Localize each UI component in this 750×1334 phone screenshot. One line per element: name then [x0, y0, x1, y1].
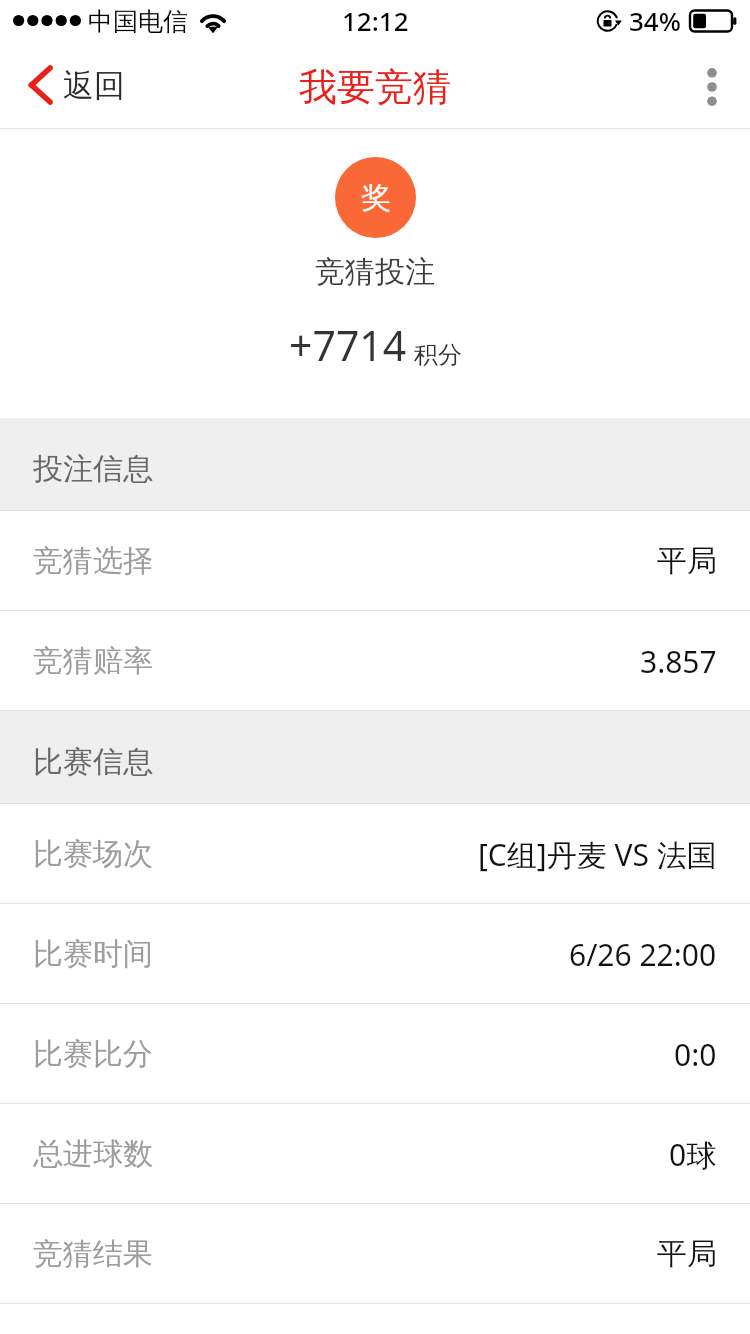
staticText: 比赛比分: [33, 1035, 153, 1073]
staticText: 6/26 22:00: [569, 934, 717, 975]
staticText: 奖: [361, 179, 391, 217]
staticText: 我要竞猜: [299, 63, 451, 111]
staticText: [C组]丹麦 VS 法国: [478, 834, 717, 875]
button[interactable]: 比赛时间: [0, 904, 750, 1004]
staticText: 比赛时间: [33, 935, 153, 973]
staticText: 积分: [414, 340, 462, 370]
staticText: 比赛信息: [33, 743, 153, 781]
staticText: 投注信息: [33, 450, 153, 488]
staticText: 竞猜结果: [33, 1235, 153, 1273]
button[interactable]: 比赛场次: [0, 804, 750, 904]
staticText: 34%: [629, 3, 681, 38]
staticText: 返回: [63, 66, 125, 105]
staticText: 竞猜投注: [315, 253, 435, 291]
button[interactable]: 竞猜选择: [0, 511, 750, 611]
staticText: 总进球数: [33, 1135, 153, 1173]
button[interactable]: 比赛比分: [0, 1004, 750, 1104]
button[interactable]: 竞猜结果: [0, 1204, 750, 1304]
button[interactable]: 总进球数: [0, 1104, 750, 1204]
staticText: 平局: [657, 542, 717, 580]
button[interactable]: 返回: [0, 53, 145, 121]
staticText: 中国电信: [88, 6, 188, 37]
staticText: 竞猜选择: [33, 542, 153, 580]
staticText: 12:12: [342, 3, 409, 38]
staticText: 0球: [669, 1134, 717, 1175]
staticText: 0:0: [674, 1034, 717, 1075]
button[interactable]: More options: [683, 54, 750, 120]
button[interactable]: 竞猜赔率: [0, 611, 750, 711]
staticText: 比赛场次: [33, 835, 153, 873]
staticText: 平局: [657, 1235, 717, 1273]
staticText: +7714: [289, 317, 407, 373]
staticText: 3.857: [640, 641, 717, 682]
staticText: 竞猜赔率: [33, 642, 153, 680]
